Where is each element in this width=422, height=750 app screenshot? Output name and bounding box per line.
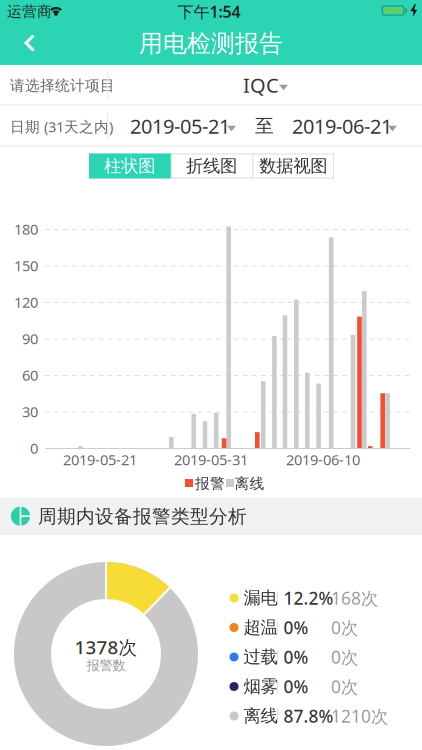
staticText: 0次 [331, 616, 358, 639]
staticText: 168次 [331, 586, 378, 609]
staticText: 烟雾 [243, 676, 277, 697]
staticText: 2019-05-31 [174, 450, 248, 469]
staticText: 0% [283, 645, 308, 668]
staticText: 0% [283, 675, 308, 698]
button[interactable]: 数据视图 [252, 153, 334, 178]
button[interactable]: 2019-06-21 [282, 106, 412, 145]
staticText: 报警 [195, 474, 225, 492]
button[interactable]: 折线图 [171, 153, 252, 178]
staticText: 用电检测报告 [139, 29, 283, 58]
staticText: 30 [22, 402, 38, 421]
staticText: 12.2% [283, 586, 333, 609]
staticText: 120 [14, 292, 38, 312]
staticText: 0% [283, 616, 308, 639]
staticText: 超温 [243, 617, 277, 638]
staticText: 离线 [243, 705, 277, 727]
staticText: 折线图 [186, 155, 237, 177]
staticText: 2019-06-21 [292, 113, 392, 139]
staticText: 2019-06-10 [286, 450, 360, 469]
staticText: 0 [30, 438, 38, 458]
staticText: 周期内设备报警类型分析 [38, 505, 247, 528]
staticText: 过载 [243, 646, 277, 668]
staticText: 请选择统计项目 [10, 76, 115, 94]
button[interactable]: 2019-05-21 [120, 106, 250, 145]
staticText: 87.8% [283, 704, 333, 727]
staticText: 漏电 [243, 587, 277, 609]
staticText: 数据视图 [259, 155, 327, 177]
staticText: 下午1:54 [177, 1, 240, 22]
staticText: 1378次 [74, 635, 137, 659]
staticText: 离线 [234, 474, 264, 492]
staticText: 报警数 [86, 657, 125, 674]
staticText: 90 [22, 329, 38, 348]
staticText: 0次 [331, 675, 358, 698]
staticText: 2019-05-21 [130, 113, 230, 139]
button[interactable] [0, 22, 60, 65]
staticText: 1210次 [331, 704, 388, 727]
staticText: 日期 (31天之内) [10, 117, 113, 136]
button[interactable]: 柱状图 [89, 153, 171, 178]
staticText: 60 [22, 365, 38, 385]
staticText: 至 [255, 114, 274, 137]
staticText: 180 [14, 219, 38, 239]
staticText: IQC [243, 72, 279, 98]
staticText: 0次 [331, 645, 358, 668]
staticText: 柱状图 [104, 155, 155, 177]
staticText: 150 [14, 256, 38, 275]
button[interactable]: IQC [124, 65, 404, 104]
staticText: 2019-05-21 [63, 450, 137, 469]
staticText: 运营商 [7, 2, 52, 20]
